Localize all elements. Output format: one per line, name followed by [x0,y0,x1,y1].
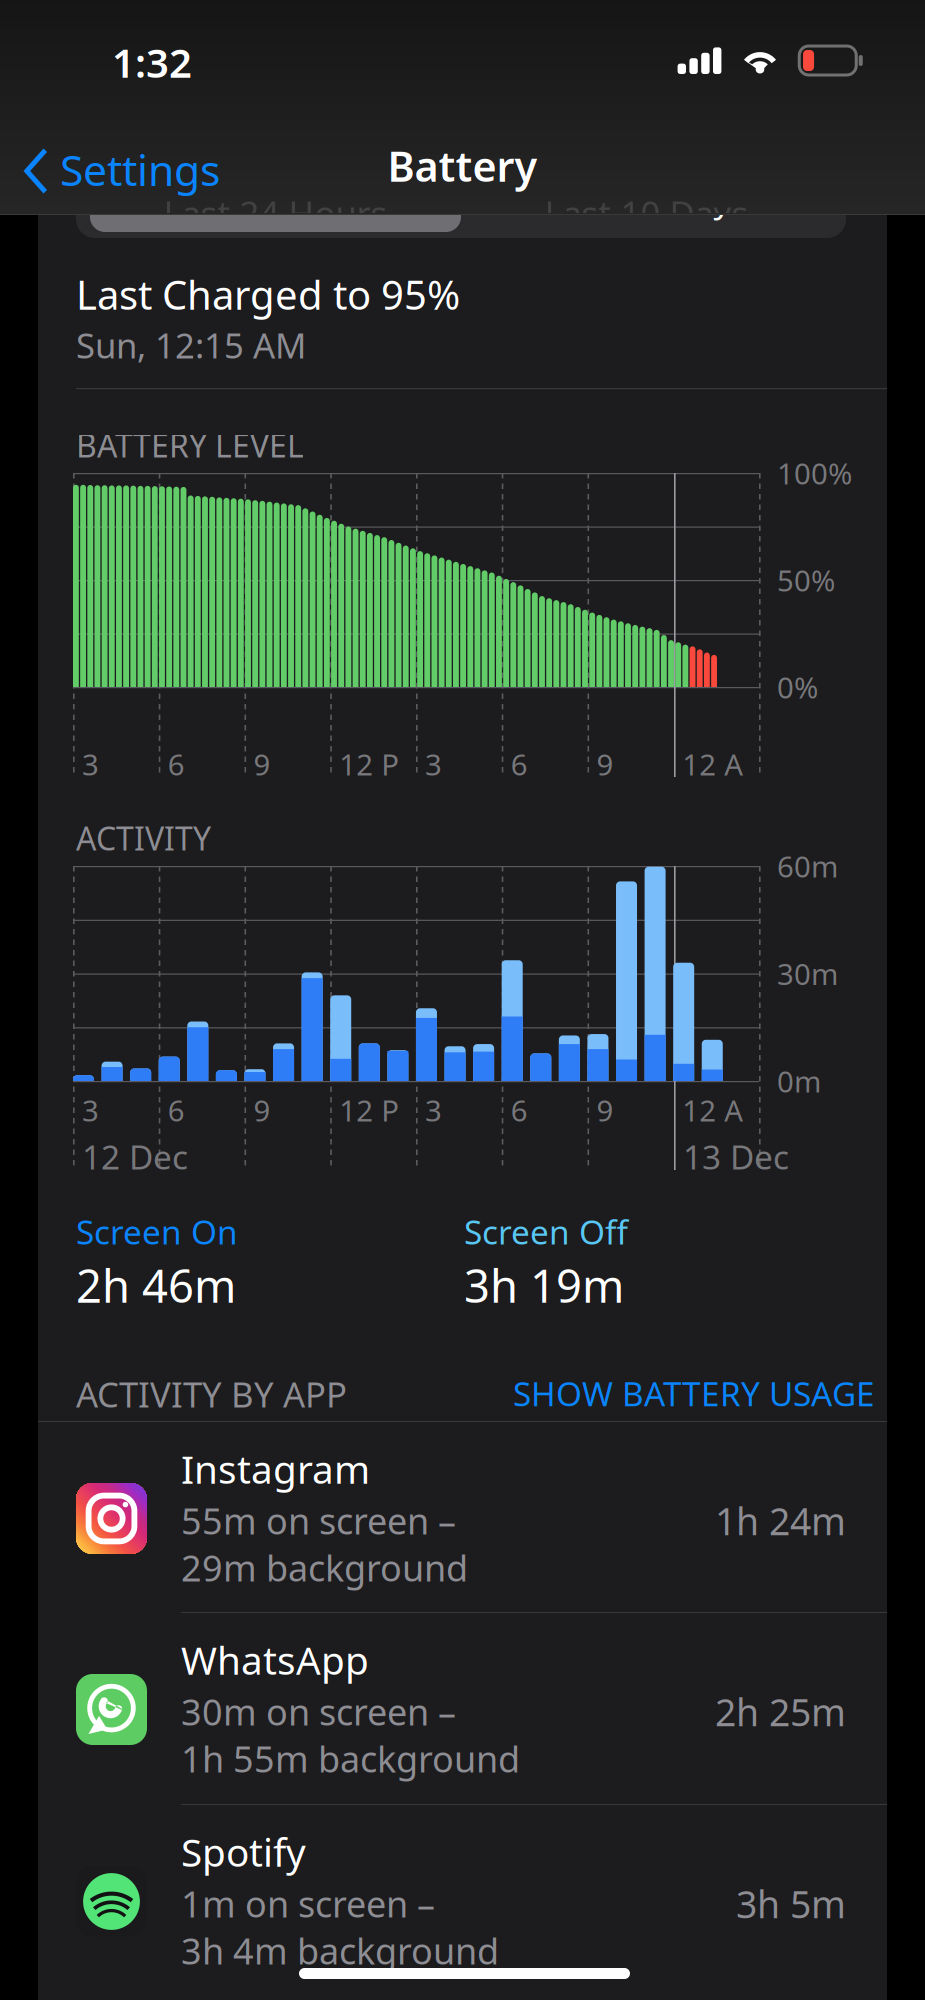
staticText: 9 [253,1091,270,1130]
staticText: 3 [425,1091,442,1130]
staticText: 30m [777,954,838,993]
staticText: 6 [168,1091,185,1130]
button[interactable]: Spotify [0,0,925,2000]
staticText: Last Charged to 95% [76,268,460,321]
staticText: 30m on screen – [181,1688,456,1735]
staticText: ACTIVITY BY APP [76,1371,347,1417]
staticText: Last 24 Hours [163,190,387,236]
staticText: 55m on screen – [181,1497,456,1544]
staticText: 3 [82,745,99,784]
staticText: 3 [425,745,442,784]
staticText: Battery [387,138,537,193]
staticText: Instagram [181,1443,370,1494]
staticText: 0m [777,1062,821,1101]
staticText: 12 P [339,1091,399,1130]
staticText: 2h 25m [715,1687,846,1737]
staticText: 100% [777,454,852,493]
staticText: 6 [168,745,185,784]
staticText: 12 A [682,1091,743,1130]
staticText: 9 [253,745,270,784]
button[interactable]: Last 24 Hours [90,166,461,232]
staticText: 1:32 [112,36,192,89]
button[interactable]: Settings [12,140,230,202]
staticText: SHOW BATTERY USAGE [513,1371,875,1415]
staticText: 13 Dec [683,1134,789,1179]
staticText: 1h 24m [715,1496,846,1546]
staticText: 6 [511,745,528,784]
button[interactable]: Last 10 Days [461,166,832,232]
staticText: 12 Dec [82,1134,188,1179]
staticText: 6 [511,1091,528,1130]
button[interactable]: WhatsApp [0,0,925,2000]
staticText: 9 [596,745,613,784]
staticText: 3h 4m background [181,1927,499,1974]
staticText: ACTIVITY [76,817,211,859]
staticText: 2h 46m [76,1255,236,1315]
staticText: Spotify [181,1826,306,1877]
staticText: 3 [82,1091,99,1130]
staticText: Screen On [76,1209,238,1254]
staticText: 3h 19m [464,1255,624,1315]
staticText: 9 [596,1091,613,1130]
staticText: 60m [777,847,838,886]
staticText: 0% [777,668,818,707]
staticText: Settings [60,141,220,198]
staticText: 1m on screen – [181,1880,435,1927]
staticText: BATTERY LEVEL [76,424,304,466]
staticText: 3h 5m [736,1879,846,1929]
staticText: 12 P [339,745,399,784]
staticText: 50% [777,561,835,600]
staticText: 12 A [682,745,743,784]
staticText: Last 24 Hours [163,176,387,222]
button[interactable]: SHOW BATTERY USAGE [513,1371,875,1415]
staticText: Last 10 Days [544,176,748,222]
button[interactable]: Instagram [0,0,925,2000]
staticText: WhatsApp [181,1634,369,1685]
staticText: Screen Off [464,1209,628,1254]
staticText: Sun, 12:15 AM [76,322,306,368]
staticText: 29m background [181,1544,468,1591]
staticText: 1h 55m background [181,1735,520,1782]
staticText: Last 10 Days [544,190,748,236]
